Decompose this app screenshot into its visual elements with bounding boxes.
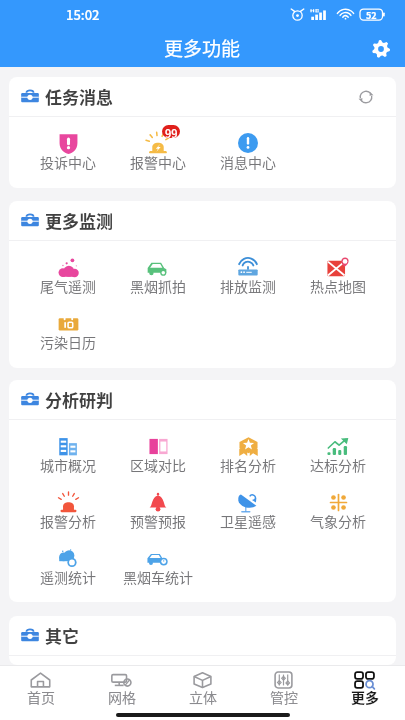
staticText: 99 — [165, 125, 178, 138]
button[interactable]: 投诉中心 — [22, 117, 113, 173]
button[interactable]: 预警预报 — [113, 476, 203, 532]
button[interactable]: 城市概况 — [22, 420, 113, 476]
staticText: 更多 — [351, 687, 379, 707]
button[interactable]: 尾气遥测 — [22, 241, 113, 297]
button[interactable]: 卫星遥感 — [203, 476, 293, 532]
staticText: 更多功能 — [164, 34, 241, 62]
staticText: 立体 — [189, 687, 217, 707]
button[interactable]: 首页 — [0, 666, 81, 710]
staticText: 任务消息 — [45, 84, 113, 109]
button[interactable]: 污染日历 — [22, 297, 113, 353]
button[interactable]: 报警分析 — [22, 476, 113, 532]
staticText: 报警中心 — [130, 152, 186, 172]
staticText: 达标分析 — [310, 455, 366, 475]
button[interactable]: 排名分析 — [203, 420, 293, 476]
staticText: 消息中心 — [220, 152, 276, 172]
staticText: 管控 — [270, 687, 298, 707]
staticText: 排名分析 — [220, 455, 276, 475]
button[interactable]: 遥测统计 — [22, 532, 113, 588]
button[interactable]: Settings — [365, 33, 397, 65]
button[interactable]: 气象分析 — [293, 476, 383, 532]
staticText: 投诉中心 — [40, 152, 96, 172]
button[interactable]: 达标分析 — [293, 420, 383, 476]
staticText: 尾气遥测 — [40, 276, 96, 296]
button[interactable]: 黑烟车统计 — [113, 532, 203, 588]
staticText: 排放监测 — [220, 276, 276, 296]
staticText: 52 — [366, 9, 377, 20]
button[interactable]: 更多 — [324, 666, 405, 710]
staticText: 报警分析 — [40, 511, 96, 531]
button[interactable]: Refresh — [354, 85, 378, 109]
staticText: 网格 — [108, 687, 136, 707]
staticText: 其它 — [45, 623, 79, 648]
staticText: 城市概况 — [40, 455, 96, 475]
button[interactable]: 黑烟抓拍 — [113, 241, 203, 297]
button[interactable]: 区域对比 — [113, 420, 203, 476]
staticText: 分析研判 — [45, 387, 113, 412]
button[interactable]: 网格 — [81, 666, 162, 710]
staticText: 区域对比 — [130, 455, 186, 475]
staticText: 预警预报 — [130, 511, 186, 531]
button[interactable]: 热点地图 — [293, 241, 383, 297]
staticText: 热点地图 — [310, 276, 366, 296]
staticText: 首页 — [27, 687, 55, 707]
staticText: 更多监测 — [45, 208, 113, 233]
button[interactable]: 管控 — [243, 666, 324, 710]
button[interactable]: 排放监测 — [203, 241, 293, 297]
staticText: 污染日历 — [40, 332, 96, 352]
button[interactable]: 99 — [113, 117, 203, 173]
staticText: 气象分析 — [310, 511, 366, 531]
staticText: 黑烟抓拍 — [130, 276, 186, 296]
staticText: 遥测统计 — [40, 567, 96, 587]
staticText: 卫星遥感 — [220, 511, 276, 531]
staticText: 黑烟车统计 — [123, 567, 193, 587]
staticText: 15:02 — [66, 5, 100, 24]
button[interactable]: 消息中心 — [203, 117, 293, 173]
button[interactable]: 立体 — [162, 666, 243, 710]
